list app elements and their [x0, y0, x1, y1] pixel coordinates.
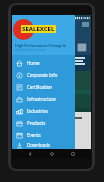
staticText: Corporate Info [27, 72, 58, 78]
button[interactable]: Back [26, 150, 34, 158]
button[interactable]: Home [12, 57, 75, 69]
staticText: Events [27, 132, 41, 138]
button[interactable]: Corporate Info [12, 69, 75, 81]
button[interactable]: Home [48, 150, 56, 158]
button[interactable]: Recents [69, 150, 77, 158]
button[interactable]: Downloads [12, 141, 75, 149]
staticText: sales@sealexcel.com [15, 48, 46, 52]
button[interactable]: Industries [12, 105, 75, 117]
button[interactable]: Events [12, 129, 75, 141]
button[interactable]: Infrastructure [12, 93, 75, 105]
staticText: Infrastructure [27, 96, 56, 102]
staticText: Products [27, 120, 46, 126]
staticText: Downloads [27, 142, 50, 148]
button[interactable]: Certification [12, 81, 75, 93]
staticText: High Performance Fittings & Valves [15, 43, 75, 48]
staticText: SEALEXCEL [22, 25, 55, 33]
button[interactable] [12, 94, 91, 108]
staticText: Certification [27, 84, 53, 90]
staticText: Home [27, 60, 40, 66]
staticText: Industries [27, 108, 48, 114]
button[interactable] [12, 71, 91, 90]
button[interactable]: Products [12, 117, 75, 129]
